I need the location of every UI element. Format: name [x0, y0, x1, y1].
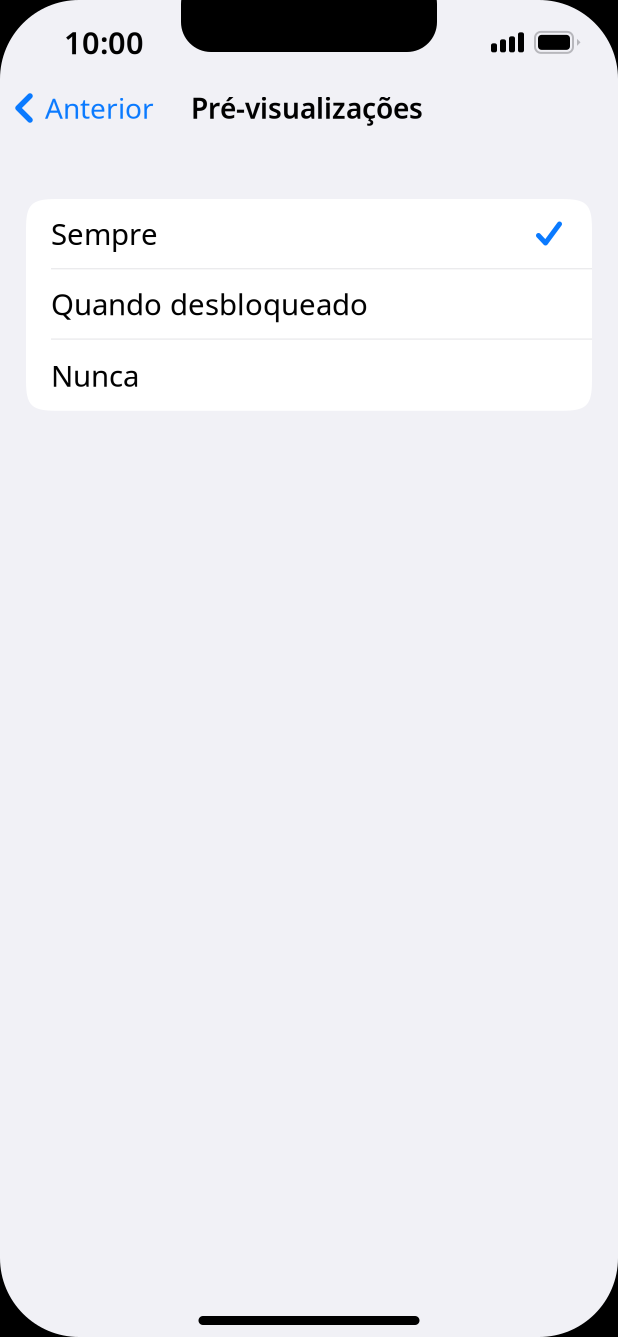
- staticText: Pré-visualizações: [191, 89, 423, 127]
- staticText: Nunca: [51, 356, 139, 395]
- staticText: Sempre: [51, 214, 158, 253]
- button[interactable]: Nunca: [26, 340, 592, 411]
- staticText: Anterior: [45, 89, 154, 127]
- button[interactable]: Anterior: [0, 81, 164, 135]
- button[interactable]: Quando desbloqueado: [26, 269, 592, 340]
- staticText: 10:00: [64, 22, 144, 63]
- button[interactable]: Sempre: [26, 199, 592, 269]
- staticText: Quando desbloqueado: [51, 284, 368, 323]
